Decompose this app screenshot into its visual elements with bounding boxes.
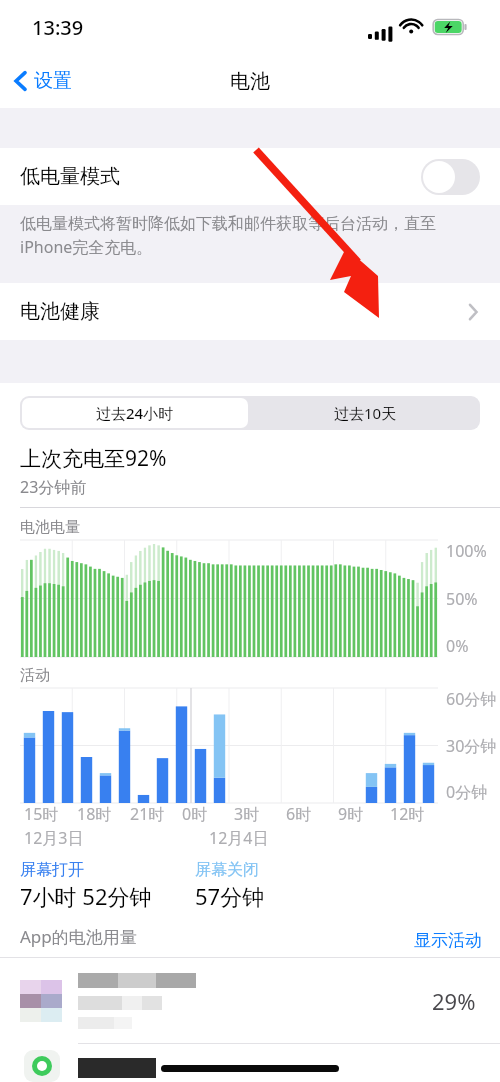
button[interactable]: 显示活动	[404, 924, 500, 957]
staticText: App的电池用量	[20, 925, 137, 948]
staticText: 设置	[34, 69, 72, 93]
staticText: 18时	[77, 803, 112, 825]
staticText: 13:39	[32, 14, 84, 41]
staticText: 电池健康	[20, 299, 100, 324]
button[interactable]: 过去24小时	[22, 398, 248, 428]
staticText: 屏幕打开	[20, 860, 84, 880]
button[interactable]: 过去10天	[250, 396, 480, 430]
staticText: 电池	[230, 69, 270, 94]
staticText: 上次充电至92%	[20, 444, 167, 473]
staticText: 21时	[130, 803, 165, 825]
staticText: 15时	[24, 803, 59, 825]
staticText: 12月3日	[24, 827, 84, 849]
staticText: 显示活动	[414, 930, 482, 951]
staticText: 12月4日	[209, 827, 269, 849]
staticText: 电池电量	[20, 518, 80, 537]
staticText: 活动	[20, 666, 50, 685]
staticText: 100%	[446, 540, 487, 562]
staticText: 9时	[338, 803, 364, 825]
staticText: 57分钟	[195, 881, 265, 911]
staticText: 过去24小时	[96, 403, 174, 423]
staticText: 23分钟前	[20, 476, 87, 498]
button[interactable]: 低电量模式开关	[421, 159, 480, 195]
staticText: 60分钟	[446, 688, 497, 710]
staticText: 0时	[182, 803, 208, 825]
button[interactable]: 低电量模式	[0, 148, 500, 205]
staticText: 过去10天	[334, 403, 397, 423]
staticText: 低电量模式	[20, 164, 120, 189]
staticText: 屏幕关闭	[195, 860, 259, 880]
staticText: 0分钟	[446, 781, 488, 803]
staticText: 30分钟	[446, 735, 497, 757]
button[interactable]: 设置	[0, 63, 82, 99]
staticText: 0%	[446, 635, 469, 657]
staticText: 12时	[390, 803, 425, 825]
staticText: 29%	[432, 986, 476, 1016]
staticText: 低电量模式将暂时降低如下载和邮件获取等后台活动，直至 iPhone完全充电。	[20, 214, 436, 258]
staticText: 50%	[446, 588, 478, 610]
staticText: 6时	[286, 803, 312, 825]
staticText: 7小时 52分钟	[20, 881, 152, 911]
staticText: 3时	[234, 803, 260, 825]
button[interactable]: 电池健康	[0, 283, 500, 340]
